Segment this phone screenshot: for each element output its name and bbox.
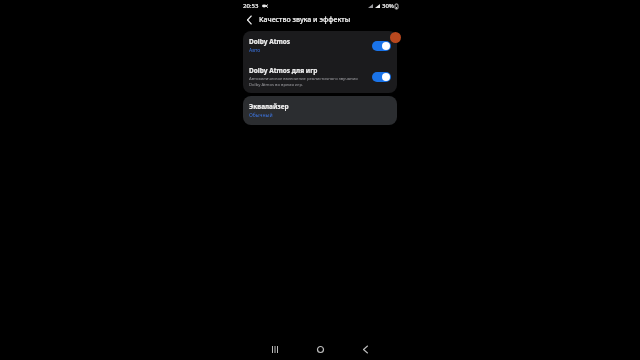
staticText: Автоматическое включение реалистичного з… bbox=[249, 76, 366, 87]
staticText: 30% bbox=[382, 2, 394, 10]
button[interactable]: Эквалайзер bbox=[243, 96, 397, 125]
staticText: Качество звука и эффекты bbox=[259, 15, 351, 25]
staticText: Авто bbox=[249, 47, 261, 54]
staticText: 20:53 bbox=[243, 2, 259, 10]
button[interactable]: Назад bbox=[357, 341, 373, 357]
staticText: Dolby Atmos для игр bbox=[249, 66, 318, 75]
button[interactable]: Переключатель bbox=[372, 72, 391, 82]
button[interactable]: Dolby Atmos bbox=[243, 31, 397, 60]
button[interactable]: Назад bbox=[242, 13, 256, 27]
staticText: Обычный bbox=[249, 112, 273, 119]
staticText: Эквалайзер bbox=[249, 102, 289, 111]
button[interactable]: Dolby Atmos для игр bbox=[243, 60, 397, 93]
button[interactable]: Главный экран bbox=[312, 341, 328, 357]
button[interactable]: Недавние приложения bbox=[267, 341, 283, 357]
staticText: Dolby Atmos bbox=[249, 37, 291, 46]
button[interactable]: Переключатель bbox=[372, 41, 391, 51]
